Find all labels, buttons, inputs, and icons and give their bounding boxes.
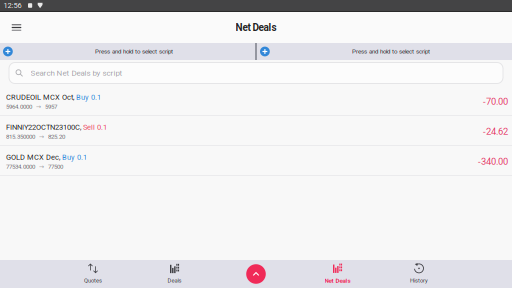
- staticText: Press and hold to select script: [95, 48, 173, 55]
- staticText: Deals: [167, 277, 181, 284]
- staticText: -24.62: [483, 126, 508, 137]
- staticText: 5957: [45, 103, 57, 110]
- staticText: Sell 0.1: [83, 123, 107, 131]
- staticText: 77534.0000: [6, 163, 35, 170]
- staticText: 77500: [48, 163, 63, 170]
- button[interactable]: New order: [243, 261, 269, 287]
- staticText: FINNIY22OCTN23100C,: [6, 123, 83, 131]
- button[interactable]: Deals: [134, 260, 215, 288]
- button[interactable]: Quotes: [52, 260, 134, 288]
- staticText: -70.00: [483, 96, 508, 107]
- staticText: CRUDEOIL MCX Oct,: [6, 93, 76, 101]
- button[interactable]: History: [378, 260, 460, 288]
- staticText: Quotes: [84, 277, 102, 284]
- staticText: Net Deals: [235, 22, 276, 33]
- staticText: →: [35, 133, 48, 140]
- button[interactable]: Menu: [5, 14, 28, 40]
- staticText: 12:56: [3, 1, 21, 10]
- staticText: Buy 0.1: [62, 153, 87, 161]
- button[interactable]: CRUDEOIL MCX Oct,: [0, 86, 512, 116]
- staticText: Net Deals: [324, 277, 350, 284]
- button[interactable]: GOLD MCX Dec,: [0, 146, 512, 176]
- button[interactable]: Press and hold to select script: [257, 43, 512, 60]
- button[interactable]: Press and hold to select script: [0, 43, 255, 60]
- button[interactable]: Net Deals: [297, 260, 378, 288]
- staticText: →: [35, 163, 48, 170]
- staticText: 5964.0000: [6, 103, 32, 110]
- staticText: History: [410, 277, 428, 284]
- button[interactable]: FINNIY22OCTN23100C,: [0, 116, 512, 146]
- staticText: →: [32, 103, 45, 110]
- staticText: Buy 0.1: [76, 93, 101, 101]
- staticText: GOLD MCX Dec,: [6, 153, 62, 161]
- staticText: -340.00: [478, 156, 508, 167]
- staticText: Press and hold to select script: [352, 48, 430, 55]
- staticText: 815.350000: [6, 133, 35, 140]
- button[interactable]: Search Net Deals by script: [9, 62, 503, 83]
- staticText: 825.20: [48, 133, 65, 140]
- staticText: Search Net Deals by script: [30, 68, 122, 78]
